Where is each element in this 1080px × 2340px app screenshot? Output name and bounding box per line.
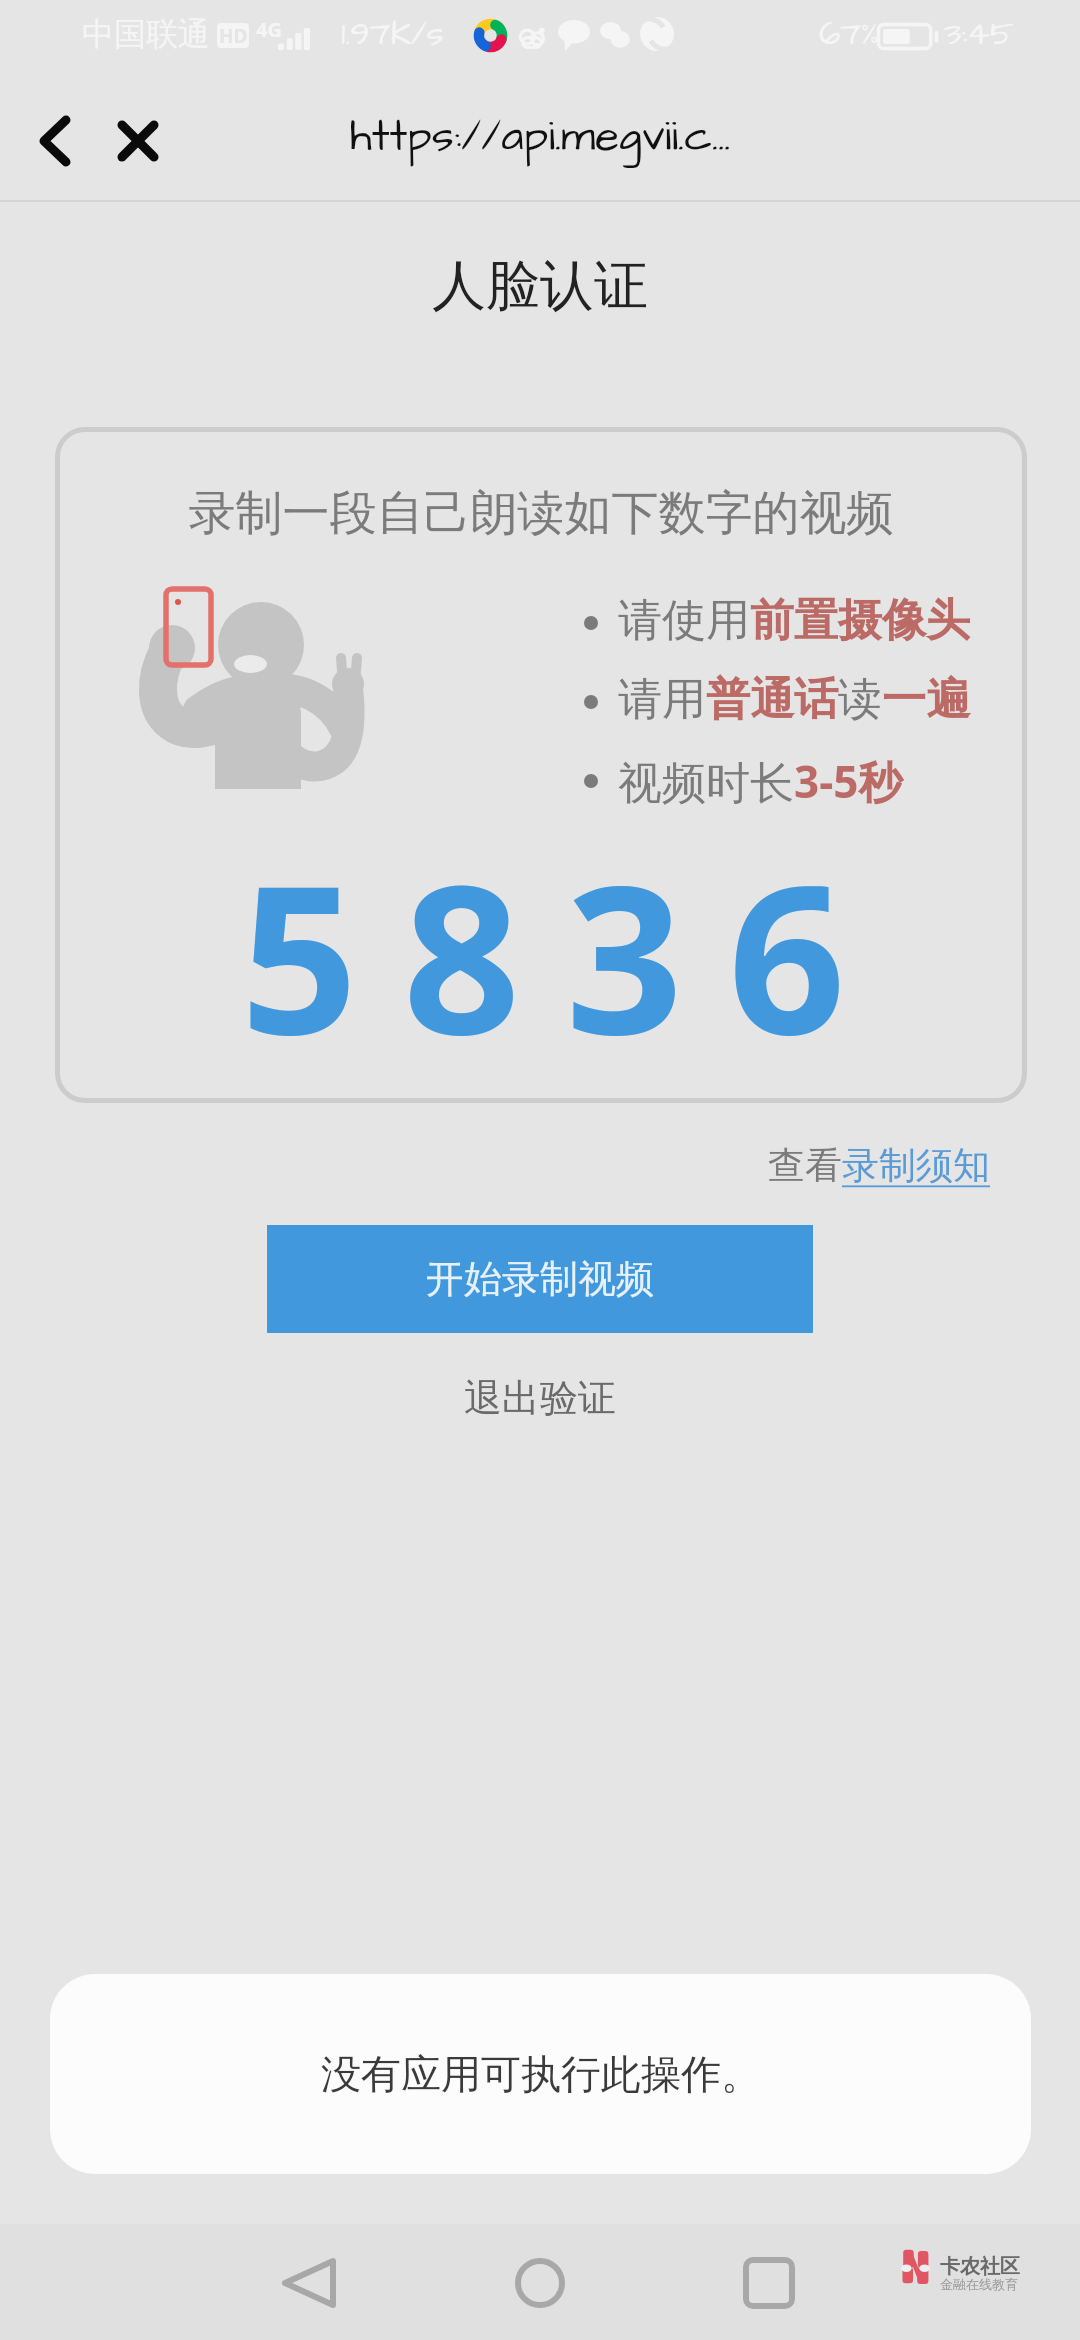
staticText: 3:45 (944, 10, 1015, 57)
button[interactable]: 退出验证 (444, 1368, 636, 1428)
staticText: https://api.megvii.c... (350, 107, 731, 168)
staticText: 请用普通话读一遍 (618, 672, 970, 727)
staticText: 金融在线教育 (940, 2276, 1018, 2292)
button[interactable]: 查看录制须知 (760, 1138, 998, 1193)
button[interactable]: Home (512, 2255, 568, 2311)
button[interactable]: Recent apps (741, 2255, 797, 2311)
staticText: HD (219, 23, 248, 48)
staticText: 人脸认证 (0, 252, 1080, 320)
button[interactable]: Back (20, 106, 90, 176)
staticText: 1.97K/s (341, 10, 444, 57)
staticText: 退出验证 (464, 1374, 616, 1422)
button[interactable]: Close (103, 106, 173, 176)
staticText: 没有应用可执行此操作。 (321, 2049, 761, 2099)
staticText: 5 8 3 6 (55, 815, 1027, 1094)
staticText: 视频时长3-5秒 (618, 751, 903, 811)
staticText: 卡农社区 (940, 2254, 1020, 2279)
staticText: 中国联通 (82, 14, 210, 54)
staticText: 录制一段自己朗读如下数字的视频 (55, 484, 1027, 543)
button[interactable]: 开始录制视频 (267, 1225, 813, 1333)
staticText: 4G (256, 16, 282, 43)
staticText: 查看录制须知 (768, 1142, 990, 1189)
staticText: 开始录制视频 (426, 1255, 654, 1303)
staticText: 请使用前置摄像头 (618, 593, 970, 648)
staticText: 67% (819, 10, 879, 57)
button[interactable]: Back (281, 2255, 337, 2311)
